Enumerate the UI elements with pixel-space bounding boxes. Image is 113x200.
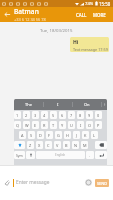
staticText: 3 bbox=[34, 113, 37, 118]
button[interactable]: U bbox=[68, 121, 75, 129]
button[interactable]: 1 bbox=[14, 111, 21, 119]
staticText: D bbox=[39, 133, 42, 138]
staticText: P bbox=[97, 123, 100, 128]
button[interactable]: 8 bbox=[77, 111, 84, 119]
staticText: . bbox=[89, 153, 91, 158]
staticText: 5 bbox=[52, 113, 55, 118]
button[interactable]: N bbox=[72, 141, 79, 149]
staticText: 7 bbox=[70, 113, 73, 118]
staticText: F bbox=[48, 133, 51, 138]
staticText: I bbox=[80, 123, 82, 128]
button[interactable]: A bbox=[19, 131, 26, 139]
staticText: A bbox=[21, 133, 24, 138]
staticText: Q bbox=[16, 123, 20, 128]
staticText: Hi bbox=[73, 39, 79, 46]
button[interactable]: Sym bbox=[14, 151, 25, 159]
staticText: 74% bbox=[85, 1, 94, 7]
staticText: Tue, 18/03/2015 bbox=[40, 27, 73, 33]
button[interactable]: CALL bbox=[73, 7, 90, 22]
button[interactable]: shift bbox=[14, 141, 25, 149]
staticText: M bbox=[83, 143, 87, 148]
staticText: Y bbox=[61, 123, 64, 128]
staticText: 6 bbox=[61, 113, 64, 118]
button[interactable]: L bbox=[91, 131, 98, 139]
button[interactable]: G bbox=[55, 131, 62, 139]
button[interactable]: enter bbox=[95, 151, 107, 159]
staticText: J bbox=[76, 133, 78, 138]
button[interactable]: The bbox=[14, 99, 43, 110]
button[interactable]: 9 bbox=[86, 111, 93, 119]
staticText: W bbox=[25, 123, 29, 128]
staticText: S bbox=[30, 133, 33, 138]
button[interactable]: V bbox=[54, 141, 61, 149]
staticText: U bbox=[70, 123, 73, 128]
button[interactable]: Z bbox=[27, 141, 34, 149]
staticText: H bbox=[66, 133, 69, 138]
button[interactable]: H bbox=[64, 131, 71, 139]
staticText: O bbox=[88, 123, 92, 128]
staticText: MORE bbox=[93, 12, 106, 18]
staticText: 4 bbox=[43, 113, 46, 118]
button[interactable]: 0 bbox=[95, 111, 102, 119]
staticText: 0 bbox=[97, 113, 100, 118]
button[interactable]: C bbox=[45, 141, 52, 149]
button[interactable]: Attach file bbox=[2, 178, 11, 187]
staticText: E bbox=[34, 123, 37, 128]
button[interactable]: I bbox=[44, 99, 72, 110]
button[interactable]: On bbox=[73, 99, 101, 110]
button[interactable]: P bbox=[95, 121, 102, 129]
button[interactable]: More suggestions bbox=[102, 99, 107, 110]
staticText: The bbox=[25, 102, 32, 107]
staticText: Enter message bbox=[16, 179, 50, 186]
button[interactable]: 6 bbox=[59, 111, 66, 119]
staticText: Z bbox=[29, 143, 32, 148]
button[interactable]: 7 bbox=[68, 111, 75, 119]
button[interactable]: F bbox=[46, 131, 53, 139]
staticText: CALL bbox=[76, 12, 87, 18]
button[interactable]: Hi bbox=[70, 37, 109, 52]
button[interactable]: del bbox=[95, 141, 107, 149]
button[interactable]: 2 bbox=[23, 111, 30, 119]
button[interactable]: English bbox=[36, 151, 85, 159]
button[interactable]: 3 bbox=[32, 111, 39, 119]
button[interactable]: K bbox=[82, 131, 89, 139]
staticText: N bbox=[74, 143, 77, 148]
staticText: B bbox=[65, 143, 68, 148]
staticText: 1 bbox=[16, 113, 19, 118]
button[interactable]: SEND bbox=[95, 179, 109, 187]
staticText: I bbox=[57, 102, 59, 107]
button[interactable]: T bbox=[50, 121, 57, 129]
button[interactable]: . bbox=[86, 151, 94, 159]
button[interactable]: Back bbox=[0, 7, 14, 22]
staticText: 2 bbox=[25, 113, 28, 118]
button[interactable]: mic bbox=[26, 151, 35, 159]
staticText: English bbox=[55, 153, 66, 157]
staticText: V bbox=[56, 143, 59, 148]
button[interactable]: E bbox=[32, 121, 39, 129]
button[interactable]: O bbox=[86, 121, 93, 129]
button[interactable]: D bbox=[37, 131, 44, 139]
button[interactable]: S bbox=[28, 131, 35, 139]
button[interactable]: 4 bbox=[41, 111, 48, 119]
staticText: R bbox=[43, 123, 46, 128]
button[interactable]: W bbox=[23, 121, 30, 129]
staticText: L bbox=[93, 133, 96, 138]
button[interactable]: R bbox=[41, 121, 48, 129]
staticText: SEND bbox=[97, 181, 107, 186]
button[interactable]: J bbox=[73, 131, 80, 139]
button[interactable]: 5 bbox=[50, 111, 57, 119]
button[interactable]: B bbox=[63, 141, 70, 149]
staticText: Text message 17:59 bbox=[73, 47, 108, 52]
button[interactable]: I bbox=[77, 121, 84, 129]
staticText: X bbox=[38, 143, 41, 148]
button[interactable]: Y bbox=[59, 121, 66, 129]
staticText: Batman bbox=[14, 7, 39, 16]
staticText: On bbox=[84, 102, 90, 107]
button[interactable]: Emoji bbox=[85, 179, 92, 186]
staticText: +33 6 12 34 56 78 bbox=[14, 17, 46, 22]
button[interactable]: Q bbox=[14, 121, 21, 129]
button[interactable]: MORE bbox=[90, 7, 109, 22]
staticText: Sym bbox=[16, 153, 23, 158]
button[interactable]: X bbox=[36, 141, 43, 149]
button[interactable]: M bbox=[81, 141, 88, 149]
